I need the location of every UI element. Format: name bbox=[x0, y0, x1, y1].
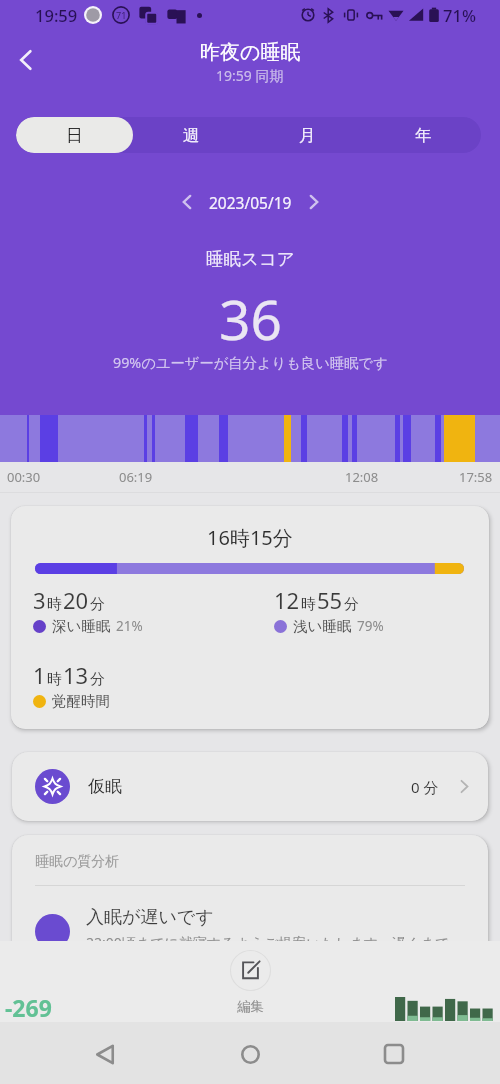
staticText: 1 bbox=[33, 660, 46, 690]
staticText: 17:58 bbox=[459, 468, 493, 486]
staticText: 入眠が遅いです bbox=[86, 906, 214, 929]
button[interactable]: 仮眠 bbox=[12, 752, 488, 821]
staticText: 月 bbox=[299, 125, 316, 146]
staticText: 睡眠スコア bbox=[206, 248, 295, 270]
staticText: 年 bbox=[415, 125, 432, 146]
staticText: 睡眠の質分析 bbox=[35, 853, 120, 871]
button[interactable]: 日 bbox=[16, 117, 133, 153]
staticText: 分 bbox=[90, 595, 105, 614]
staticText: 仮眠 bbox=[88, 776, 122, 797]
staticText: 12 bbox=[274, 585, 300, 615]
staticText: 99%のユーザーが自分よりも良い睡眠です bbox=[113, 353, 388, 373]
staticText: 21% bbox=[116, 617, 143, 635]
staticText: 12:08 bbox=[345, 468, 379, 486]
staticText: 20 bbox=[63, 585, 89, 615]
button[interactable]: Previous day bbox=[171, 186, 203, 218]
staticText: 06:19 bbox=[119, 468, 153, 486]
button[interactable]: 年 bbox=[365, 117, 481, 153]
button[interactable]: 月 bbox=[249, 117, 365, 153]
staticText: 2023/05/19 bbox=[209, 192, 292, 213]
staticText: 浅い睡眠 bbox=[293, 617, 352, 635]
button[interactable]: Home bbox=[226, 1030, 274, 1078]
staticText: -269 bbox=[5, 992, 52, 1023]
button[interactable]: 編集 bbox=[230, 950, 271, 1015]
staticText: 0 分 bbox=[411, 777, 439, 797]
staticText: 36 bbox=[219, 281, 282, 356]
staticText: 16時15分 bbox=[207, 524, 293, 551]
staticText: 79% bbox=[357, 617, 384, 635]
staticText: 分 bbox=[344, 595, 359, 614]
staticText: 時 bbox=[301, 595, 316, 614]
staticText: 71% bbox=[443, 4, 476, 26]
staticText: 日 bbox=[66, 125, 83, 146]
button[interactable]: Recent apps bbox=[370, 1030, 418, 1078]
staticText: 22:00頃までに就寝するようご提案いたします。遅くまで bbox=[86, 933, 450, 952]
staticText: 覚醒時間 bbox=[52, 692, 110, 710]
staticText: 時 bbox=[47, 670, 62, 689]
button[interactable]: Next day bbox=[298, 186, 330, 218]
staticText: 昨夜の睡眠 bbox=[200, 40, 301, 65]
staticText: 分 bbox=[90, 670, 105, 689]
staticText: 19:59 bbox=[35, 4, 78, 26]
staticText: 編集 bbox=[237, 998, 264, 1015]
button[interactable]: Back bbox=[81, 1030, 129, 1078]
staticText: 00:30 bbox=[7, 468, 41, 486]
staticText: 19:59 同期 bbox=[216, 66, 284, 85]
staticText: 週 bbox=[183, 125, 200, 146]
staticText: 13 bbox=[63, 660, 89, 690]
staticText: 55 bbox=[317, 585, 343, 615]
button[interactable]: 週 bbox=[133, 117, 249, 153]
staticText: 71 bbox=[116, 9, 127, 21]
staticText: 深い睡眠 bbox=[52, 617, 111, 635]
staticText: 3 bbox=[33, 585, 46, 615]
staticText: 時 bbox=[47, 595, 62, 614]
button[interactable]: Back bbox=[6, 40, 46, 80]
